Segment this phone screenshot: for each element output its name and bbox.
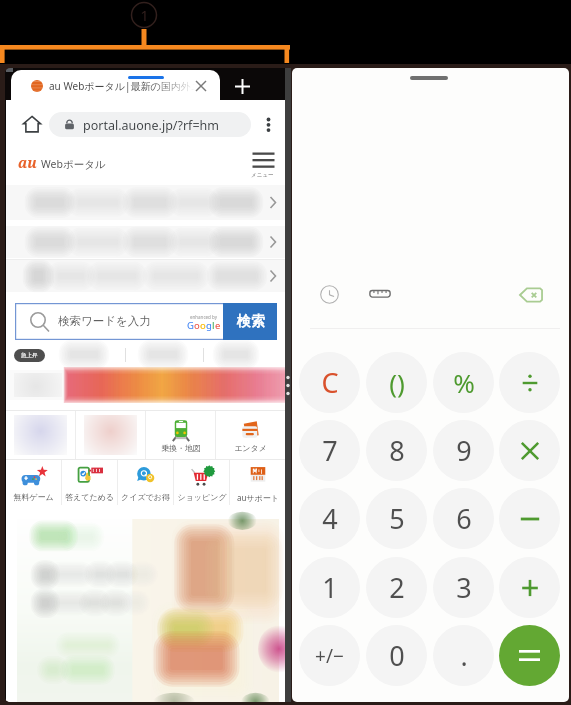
staticText: auサポート	[237, 492, 279, 503]
staticText: 2	[389, 569, 405, 606]
button[interactable]: Close tab	[192, 77, 210, 95]
staticText: 乗換・地図	[161, 443, 201, 453]
button[interactable]: Home	[21, 113, 43, 135]
button[interactable]: Split screen divider	[285, 68, 291, 702]
staticText: l	[212, 319, 215, 332]
button[interactable]	[76, 411, 145, 459]
staticText: 答えてためる	[65, 492, 114, 502]
staticText: ショッピング	[177, 492, 227, 502]
staticText: 急上昇	[21, 352, 38, 359]
button[interactable]: Multiply	[499, 420, 560, 481]
staticText: 7	[322, 432, 338, 469]
button[interactable]: Plus minus	[299, 625, 360, 686]
staticText: ()	[389, 365, 405, 400]
button[interactable]: 答えてためる	[62, 460, 117, 505]
button[interactable]: 0	[366, 625, 427, 686]
button[interactable]: Parentheses	[366, 352, 427, 413]
button[interactable]: More options	[256, 112, 280, 136]
staticText: au	[18, 153, 37, 172]
button[interactable]: 3	[433, 557, 494, 618]
button[interactable]: 7	[299, 420, 360, 481]
button[interactable]: 5	[366, 488, 427, 549]
staticText: 8	[389, 432, 405, 469]
button[interactable]: Add	[499, 557, 560, 618]
button[interactable]: Divide	[499, 352, 560, 413]
staticText: 4	[322, 500, 338, 537]
button[interactable]: クイズでお得	[118, 460, 173, 505]
button[interactable]: Menu	[251, 150, 279, 182]
button[interactable]: 急上昇	[14, 349, 45, 362]
button[interactable]	[6, 411, 75, 459]
button[interactable]: 9	[433, 420, 494, 481]
staticText: G	[187, 319, 194, 332]
staticText: au Webポータル|最新の国内外ニュース	[49, 79, 195, 93]
button[interactable]: ショッピング	[174, 460, 229, 505]
staticText: 9	[456, 432, 472, 469]
staticText: 6	[456, 500, 472, 537]
staticText: クイズでお得	[121, 492, 170, 502]
button[interactable]	[6, 370, 285, 400]
staticText: Webポータル	[41, 157, 106, 171]
staticText: o	[200, 319, 206, 332]
staticText: C	[321, 364, 339, 401]
button[interactable]: Unit converter	[367, 281, 393, 307]
button[interactable]: Backspace	[517, 281, 545, 309]
staticText: g	[206, 319, 212, 332]
staticText: 1	[140, 5, 149, 21]
button[interactable]: 検索ワードを入力	[15, 303, 277, 340]
staticText: %	[453, 365, 475, 400]
button[interactable]: portal.auone.jp/?rf=hm	[49, 112, 251, 137]
button[interactable]: History	[316, 281, 342, 307]
button[interactable]: 1	[299, 557, 360, 618]
button[interactable]	[6, 260, 285, 292]
button[interactable]: Subtract	[499, 488, 560, 549]
staticText: 検索ワードを入力	[58, 314, 151, 328]
button[interactable]: 6	[433, 488, 494, 549]
staticText: 0	[389, 637, 405, 674]
button[interactable]: New tab	[232, 76, 252, 96]
button[interactable]	[17, 519, 279, 702]
button[interactable]: auサポート	[230, 460, 285, 505]
button[interactable]: Clear	[299, 352, 360, 413]
staticText: エンタメ	[234, 443, 267, 453]
button[interactable]: 乗換・地図	[146, 411, 215, 459]
button[interactable]	[6, 185, 285, 220]
staticText: 検索	[237, 313, 265, 331]
button[interactable]: Equals	[499, 625, 560, 686]
staticText: 1	[322, 569, 338, 606]
button[interactable]: エンタメ	[216, 411, 285, 459]
staticText: o	[194, 319, 200, 332]
staticText: enhanced by	[190, 314, 218, 320]
staticText: portal.auone.jp/?rf=hm	[83, 117, 219, 134]
button[interactable]	[6, 226, 285, 258]
button[interactable]: au Webポータル|最新の国内外ニュース	[11, 70, 220, 102]
staticText: メニュー	[251, 172, 274, 179]
staticText: 5	[389, 500, 405, 537]
button[interactable]: 無料ゲーム	[6, 460, 61, 505]
staticText: 無料ゲーム	[13, 492, 54, 502]
button[interactable]: 2	[366, 557, 427, 618]
button[interactable]: 8	[366, 420, 427, 481]
button[interactable]: 4	[299, 488, 360, 549]
staticText: +/−	[315, 643, 344, 669]
staticText: 3	[456, 569, 472, 606]
staticText: .	[460, 637, 468, 674]
button[interactable]: Decimal point	[433, 625, 494, 686]
staticText: e	[215, 319, 221, 332]
button[interactable]: Percent	[433, 352, 494, 413]
